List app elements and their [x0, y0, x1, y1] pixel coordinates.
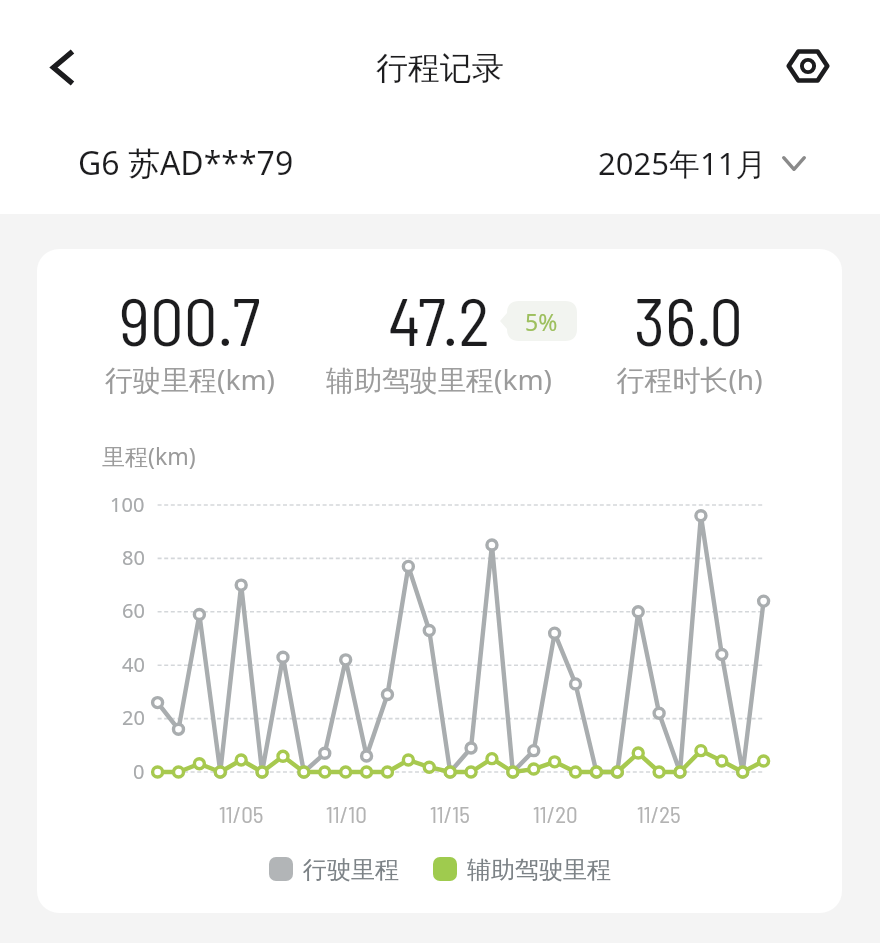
staticText: 20 — [122, 704, 145, 731]
staticText: 11/20 — [533, 800, 578, 828]
staticText: 900.7 — [119, 279, 261, 349]
staticText: 40 — [122, 651, 145, 678]
staticText: 行程时长(h) — [616, 360, 763, 398]
staticText: 2025年11月 — [598, 142, 767, 184]
button[interactable]: 5% — [500, 301, 577, 341]
staticText: 0 — [133, 758, 145, 785]
staticText: 47.2 — [388, 279, 490, 349]
button[interactable]: Back — [33, 37, 93, 97]
staticText: 11/15 — [430, 800, 470, 828]
button[interactable]: 行驶里程 — [269, 855, 399, 883]
staticText: 36.0 — [634, 279, 744, 349]
staticText: G6 苏AD***79 — [78, 141, 294, 185]
staticText: 5% — [525, 306, 558, 337]
staticText: 行驶里程 — [303, 855, 399, 883]
staticText: 辅助驾驶里程(km) — [326, 360, 552, 398]
staticText: 11/25 — [637, 800, 681, 828]
staticText: 11/10 — [326, 800, 367, 828]
button[interactable]: 900.7 — [65, 279, 314, 398]
staticText: 60 — [122, 597, 145, 624]
button[interactable]: 辅助驾驶里程 — [433, 855, 611, 883]
staticText: 里程(km) — [102, 440, 196, 471]
staticText: 11/05 — [219, 800, 264, 828]
button[interactable]: Vehicle settings — [778, 36, 838, 96]
staticText: 80 — [122, 544, 145, 571]
staticText: 100 — [110, 491, 145, 518]
staticText: 行驶里程(km) — [105, 360, 275, 398]
staticText: 行程记录 — [376, 48, 504, 88]
button[interactable]: G6 苏AD***79 — [0, 124, 880, 202]
button[interactable]: 47.2 — [314, 279, 564, 398]
button[interactable]: 36.0 — [564, 279, 814, 398]
staticText: 辅助驾驶里程 — [467, 855, 611, 883]
